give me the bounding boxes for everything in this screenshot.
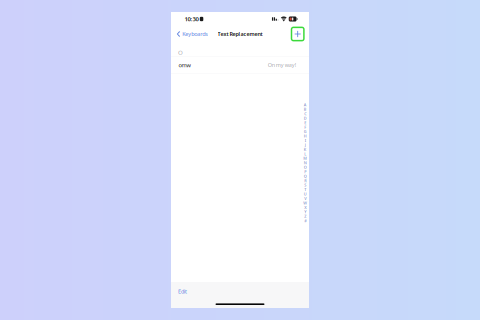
staticText: W	[303, 200, 307, 206]
staticText: V	[304, 196, 306, 201]
staticText: U	[304, 191, 307, 197]
button[interactable]: Section index	[303, 103, 308, 223]
button[interactable]: Edit	[171, 285, 193, 298]
staticText: N	[304, 160, 307, 165]
button[interactable]: Keyboards	[171, 27, 211, 41]
staticText: On my way!	[268, 61, 296, 69]
staticText: X	[304, 205, 306, 210]
button[interactable]: Add text replacement	[291, 27, 309, 41]
staticText: omw	[178, 61, 190, 69]
staticText: F	[304, 124, 306, 130]
staticText: R	[304, 178, 306, 183]
staticText: Text Replacement	[217, 30, 262, 38]
staticText: Keyboards	[182, 30, 208, 38]
button[interactable]: omw	[171, 57, 309, 73]
staticText: 10:30	[185, 15, 199, 23]
staticText: D	[304, 116, 307, 121]
staticText: E	[304, 120, 306, 125]
staticText: H	[304, 133, 307, 139]
staticText: M	[303, 156, 307, 161]
staticText: Edit	[178, 287, 187, 295]
staticText: L	[304, 151, 306, 157]
staticText: T	[304, 187, 306, 192]
staticText: Q	[304, 174, 307, 179]
staticText: Z	[304, 214, 306, 219]
staticText: #	[304, 218, 306, 223]
staticText: G	[304, 129, 307, 134]
staticText: P	[304, 169, 306, 174]
staticText: I	[305, 138, 306, 143]
staticText: K	[304, 147, 307, 152]
staticText: Y	[304, 209, 306, 214]
staticText: A	[304, 102, 307, 107]
staticText: J	[305, 142, 306, 148]
staticText: C	[304, 111, 306, 116]
staticText: O	[178, 48, 183, 56]
staticText: S	[304, 182, 306, 188]
staticText: B	[304, 107, 307, 112]
staticText: O	[304, 165, 307, 170]
